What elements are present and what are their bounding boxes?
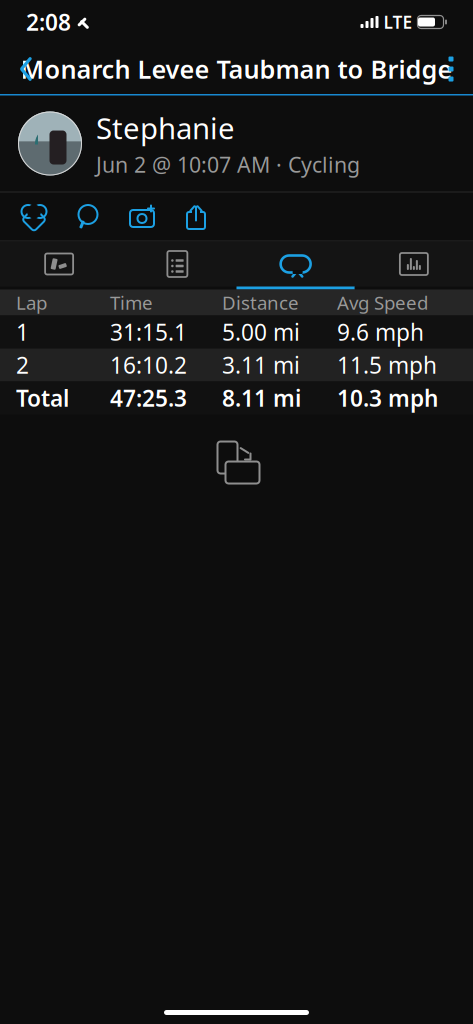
staticText: 5.00 mi xyxy=(222,317,300,347)
button[interactable]: Add photo xyxy=(122,194,162,238)
staticText: Total xyxy=(16,383,69,413)
button[interactable]: Details xyxy=(118,241,236,289)
button[interactable]: Like xyxy=(14,194,54,238)
staticText: 1 xyxy=(16,317,29,347)
staticText: Jun 2 @ 10:07 AM · Cycling xyxy=(96,150,360,179)
staticText: 9.6 mph xyxy=(337,317,424,347)
staticText: Avg Speed xyxy=(337,290,428,315)
button[interactable]: 2 xyxy=(0,348,473,381)
staticText: 10.3 mph xyxy=(337,383,438,413)
staticText: 2:08 xyxy=(26,7,71,37)
button[interactable]: Map xyxy=(0,241,118,289)
button[interactable]: Total xyxy=(0,381,473,414)
staticText: 2 xyxy=(16,350,29,380)
button[interactable]: Back xyxy=(0,45,52,93)
staticText: 11.5 mph xyxy=(337,350,437,380)
staticText: LTE xyxy=(383,10,412,33)
button[interactable]: Charts xyxy=(355,241,473,289)
staticText: 47:25.3 xyxy=(110,383,187,413)
staticText: 31:15.1 xyxy=(110,317,187,347)
staticText: 8.11 mi xyxy=(222,383,301,413)
button[interactable]: Laps xyxy=(236,241,355,289)
staticText: Lap xyxy=(16,290,47,315)
button[interactable]: Comment xyxy=(68,194,108,238)
staticText: Distance xyxy=(222,290,299,315)
staticText: Time xyxy=(110,290,153,315)
staticText: 16:10.2 xyxy=(110,350,187,380)
button[interactable]: Stephanie xyxy=(0,95,473,191)
button[interactable]: More options xyxy=(429,45,473,93)
button[interactable]: 1 xyxy=(0,315,473,348)
staticText: Stephanie xyxy=(96,108,235,147)
staticText: 3.11 mi xyxy=(222,350,300,380)
button[interactable]: Share xyxy=(176,194,216,238)
staticText: Monarch Levee Taubman to Bridge xyxy=(20,52,452,86)
